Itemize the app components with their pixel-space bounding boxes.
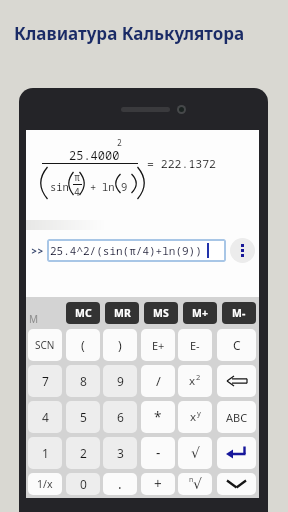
button[interactable]: SCN: [28, 329, 62, 361]
button[interactable]: [217, 365, 256, 397]
staticText: ln: [102, 180, 115, 194]
button[interactable]: 6: [103, 401, 137, 433]
staticText: 1: [42, 445, 49, 461]
staticText: n: [189, 475, 194, 485]
staticText: +: [154, 475, 162, 493]
staticText: M-: [232, 306, 246, 320]
staticText: (: [81, 337, 85, 354]
staticText: 9: [117, 373, 124, 389]
staticText: √: [191, 445, 200, 461]
button[interactable]: x: [178, 365, 212, 397]
staticText: 8: [80, 373, 87, 389]
button[interactable]: [230, 238, 255, 263]
button[interactable]: [217, 473, 256, 495]
button[interactable]: (: [66, 329, 100, 361]
staticText: 0: [80, 476, 87, 492]
button[interactable]: 25.4^2/(sin(π/4)+ln(9)): [47, 239, 226, 262]
button[interactable]: [217, 437, 256, 469]
staticText: .: [118, 475, 122, 493]
button[interactable]: C: [217, 329, 256, 361]
button[interactable]: 1/x: [28, 473, 62, 495]
staticText: 4: [74, 185, 80, 199]
staticText: C: [233, 337, 241, 353]
staticText: 1/x: [37, 477, 53, 491]
staticText: 2: [196, 372, 201, 382]
button[interactable]: 8: [66, 365, 100, 397]
button[interactable]: ): [103, 329, 137, 361]
staticText: x: [190, 409, 197, 425]
staticText: ABC: [226, 410, 248, 425]
staticText: 2: [80, 445, 87, 461]
staticText: -: [156, 444, 161, 462]
staticText: x: [189, 373, 196, 389]
staticText: MS: [153, 306, 169, 320]
staticText: MC: [75, 306, 92, 320]
button[interactable]: 2: [66, 437, 100, 469]
button[interactable]: E+: [141, 329, 175, 361]
staticText: E-: [190, 338, 200, 353]
staticText: 4: [42, 409, 49, 425]
button[interactable]: MS: [144, 302, 178, 324]
button[interactable]: 9: [103, 365, 137, 397]
button[interactable]: /: [141, 365, 175, 397]
staticText: π: [74, 170, 80, 184]
button[interactable]: MC: [66, 302, 100, 324]
staticText: 25.4^2/(sin(π/4)+ln(9)): [50, 243, 202, 258]
staticText: >>: [31, 244, 44, 258]
staticText: 9: [121, 180, 128, 194]
staticText: M: [29, 312, 39, 326]
button[interactable]: 3: [103, 437, 137, 469]
staticText: = 222.1372: [147, 156, 216, 172]
staticText: MR: [114, 306, 131, 320]
staticText: M+: [192, 306, 208, 320]
button[interactable]: n: [178, 473, 212, 495]
button[interactable]: +: [141, 473, 175, 495]
button[interactable]: ABC: [217, 401, 256, 433]
staticText: +: [90, 180, 97, 194]
button[interactable]: 7: [28, 365, 62, 397]
staticText: *: [154, 408, 162, 426]
button[interactable]: 4: [28, 401, 62, 433]
staticText: y: [197, 408, 201, 418]
button[interactable]: 1: [28, 437, 62, 469]
button[interactable]: .: [103, 473, 137, 495]
staticText: SCN: [35, 338, 55, 352]
staticText: √: [193, 476, 202, 492]
button[interactable]: M-: [222, 302, 256, 324]
button[interactable]: E-: [178, 329, 212, 361]
button[interactable]: 0: [66, 473, 100, 495]
staticText: 25.4000: [69, 147, 120, 163]
staticText: 7: [42, 373, 49, 389]
staticText: E+: [152, 338, 165, 353]
staticText: Клавиатура Калькулятора: [14, 22, 245, 45]
staticText: ): [118, 337, 122, 354]
staticText: 5: [80, 409, 87, 425]
button[interactable]: √: [178, 437, 212, 469]
button[interactable]: M+: [183, 302, 217, 324]
staticText: /: [156, 372, 161, 390]
button[interactable]: -: [141, 437, 175, 469]
staticText: 6: [117, 409, 124, 425]
staticText: 2: [117, 137, 122, 148]
button[interactable]: MR: [105, 302, 139, 324]
button[interactable]: x: [178, 401, 212, 433]
staticText: sin: [50, 180, 69, 194]
staticText: 3: [117, 445, 124, 461]
button[interactable]: 5: [66, 401, 100, 433]
button[interactable]: *: [141, 401, 175, 433]
